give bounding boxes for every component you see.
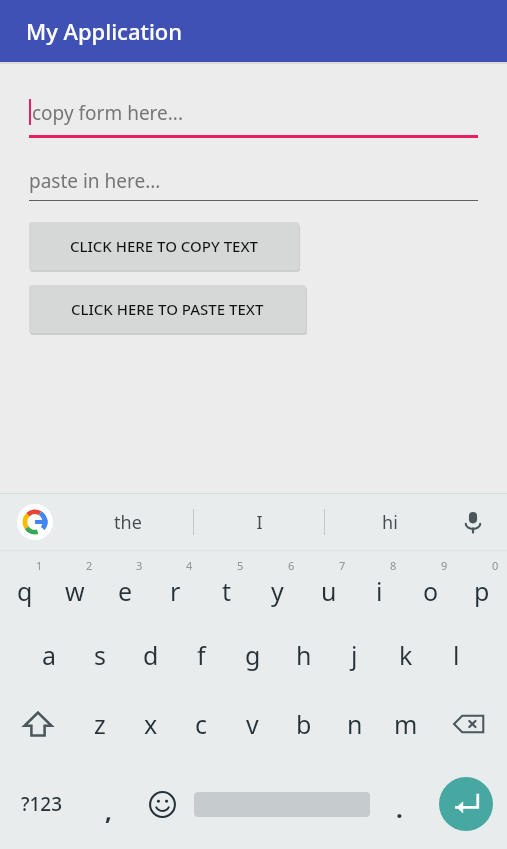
staticText: c <box>195 707 208 741</box>
button[interactable]: s <box>74 621 125 689</box>
button[interactable]: Google <box>17 504 53 540</box>
staticText: k <box>399 638 413 672</box>
staticText: I <box>256 510 263 535</box>
staticText: copy form here... <box>32 100 184 126</box>
button[interactable]: l <box>431 621 482 689</box>
staticText: p <box>474 574 490 608</box>
button[interactable]: I <box>194 494 324 550</box>
button[interactable]: g <box>227 621 278 689</box>
button[interactable]: o <box>405 551 456 621</box>
staticText: o <box>423 574 439 608</box>
staticText: CLICK HERE TO PASTE TEXT <box>71 299 264 319</box>
staticText: q <box>17 574 33 608</box>
staticText: f <box>197 638 206 672</box>
button[interactable]: p <box>456 551 507 621</box>
button[interactable]: Shift <box>0 689 75 759</box>
button[interactable]: Space <box>190 759 374 849</box>
staticText: g <box>245 638 261 672</box>
button[interactable]: j <box>329 621 380 689</box>
staticText: 7 <box>339 558 346 573</box>
button[interactable]: w <box>50 551 100 621</box>
staticText: u <box>321 574 337 608</box>
staticText: , <box>105 794 112 827</box>
staticText: hi <box>382 510 398 535</box>
staticText: h <box>296 638 312 672</box>
staticText: s <box>94 638 106 672</box>
button[interactable]: hi <box>325 494 455 550</box>
staticText: w <box>65 574 85 608</box>
button[interactable]: Emoji <box>134 759 190 849</box>
button[interactable]: k <box>380 621 431 689</box>
button[interactable]: a <box>24 621 74 689</box>
button[interactable]: the <box>62 494 193 550</box>
staticText: . <box>396 792 403 825</box>
staticText: b <box>296 707 312 741</box>
staticText: e <box>118 574 133 608</box>
button[interactable]: , <box>83 759 134 849</box>
button[interactable]: h <box>278 621 329 689</box>
staticText: m <box>394 707 418 741</box>
button[interactable]: Voice input <box>453 502 493 542</box>
staticText: 1 <box>36 558 43 573</box>
staticText: the <box>114 510 142 535</box>
staticText: My Application <box>26 16 183 46</box>
button[interactable]: v <box>227 689 278 759</box>
button[interactable]: r <box>150 551 201 621</box>
staticText: r <box>170 574 181 608</box>
button[interactable]: b <box>278 689 329 759</box>
staticText: 2 <box>86 558 93 573</box>
staticText: CLICK HERE TO COPY TEXT <box>70 236 259 256</box>
button[interactable]: d <box>125 621 176 689</box>
staticText: 4 <box>186 558 193 573</box>
staticText: y <box>271 574 284 608</box>
staticText: j <box>351 638 358 672</box>
staticText: 3 <box>136 558 143 573</box>
button[interactable]: y <box>252 551 303 621</box>
staticText: i <box>376 574 383 608</box>
staticText: x <box>144 707 158 741</box>
button[interactable]: z <box>75 689 125 759</box>
staticText: 5 <box>237 558 244 573</box>
staticText: d <box>143 638 159 672</box>
button[interactable]: x <box>125 689 176 759</box>
button[interactable]: e <box>100 551 150 621</box>
staticText: t <box>222 574 232 608</box>
staticText: v <box>246 707 259 741</box>
staticText: 0 <box>492 558 499 573</box>
staticText: ?123 <box>21 791 63 817</box>
button[interactable]: t <box>201 551 252 621</box>
staticText: 8 <box>390 558 397 573</box>
button[interactable]: i <box>354 551 405 621</box>
button[interactable]: m <box>380 689 431 759</box>
button[interactable]: CLICK HERE TO COPY TEXT <box>29 222 299 270</box>
staticText: 6 <box>288 558 295 573</box>
button[interactable]: u <box>303 551 354 621</box>
staticText: n <box>347 707 363 741</box>
staticText: a <box>42 638 57 672</box>
button[interactable]: CLICK HERE TO PASTE TEXT <box>29 285 306 333</box>
button[interactable]: n <box>329 689 380 759</box>
staticText: l <box>453 638 460 672</box>
button[interactable]: Backspace <box>431 689 507 759</box>
staticText: 9 <box>441 558 448 573</box>
button[interactable]: c <box>176 689 227 759</box>
button[interactable]: f <box>176 621 227 689</box>
button[interactable]: Enter <box>425 759 507 849</box>
button[interactable]: ?123 <box>0 759 83 849</box>
button[interactable]: . <box>374 759 425 849</box>
staticText: z <box>94 707 106 741</box>
button[interactable]: q <box>0 551 50 621</box>
staticText: paste in here... <box>29 168 161 194</box>
